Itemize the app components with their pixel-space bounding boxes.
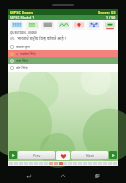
button[interactable] — [54, 162, 58, 165]
button[interactable]: Notes — [41, 21, 54, 30]
button[interactable]: First question — [9, 151, 17, 159]
button[interactable]: Finish — [103, 21, 116, 30]
staticText: २ अशोक चिन्ह — [16, 51, 36, 56]
button[interactable] — [49, 162, 53, 165]
button[interactable]: Home — [58, 171, 68, 181]
staticText: MPSC Exam — [10, 10, 33, 15]
staticText: कमळ फूल — [16, 44, 30, 49]
staticText: मोर चिन्ह — [16, 65, 28, 70]
button[interactable]: Favourite — [56, 151, 70, 160]
staticText: QUESTION - 00000 — [10, 31, 37, 35]
button[interactable]: Chart — [57, 21, 70, 30]
staticText: Prev — [33, 153, 41, 158]
button[interactable]: Next — [71, 151, 108, 159]
button[interactable]: मोर चिन्ह — [8, 64, 118, 71]
button[interactable]: Share — [87, 21, 100, 30]
button[interactable]: वाघ चिन्ह — [8, 57, 118, 64]
button[interactable]: Bookmark — [72, 21, 85, 30]
button[interactable] — [59, 162, 63, 165]
staticText: वाघ चिन्ह — [16, 58, 29, 63]
button[interactable]: Back — [24, 171, 34, 181]
button[interactable]: Question list — [10, 21, 23, 30]
button[interactable]: Last question — [109, 151, 117, 159]
button[interactable]: Answers — [26, 21, 39, 30]
staticText: Next — [86, 153, 94, 158]
button[interactable]: Prev — [18, 151, 55, 159]
button[interactable]: कमळ फूल — [8, 43, 118, 50]
staticText: Score: 02 — [98, 10, 116, 15]
button[interactable]: २ अशोक चिन्ह — [8, 50, 118, 57]
staticText: ०१. भारताचे राष्ट्रीय चिन्ह कोणते आहे ? — [10, 36, 67, 41]
button[interactable]: MPSC Model 1 — [8, 15, 118, 20]
button[interactable]: MPSC Exam — [8, 9, 118, 15]
button[interactable]: Recent apps — [92, 171, 102, 181]
staticText: 1 / 50 — [106, 15, 116, 20]
staticText: MPSC Model 1 — [10, 15, 35, 20]
